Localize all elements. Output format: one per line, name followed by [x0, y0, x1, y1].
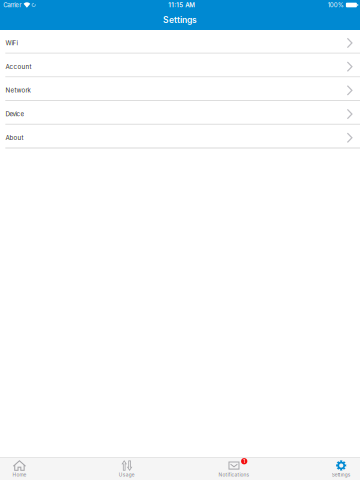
staticText: Carrier: [3, 1, 21, 9]
button[interactable]: Device: [0, 101, 360, 125]
staticText: About: [5, 134, 23, 141]
staticText: Network: [5, 87, 30, 94]
staticText: Settings: [332, 472, 351, 478]
staticText: Device: [5, 110, 24, 118]
staticText: WiFi: [5, 39, 17, 47]
button[interactable]: Usage: [73, 458, 180, 480]
button[interactable]: WiFi: [0, 30, 360, 54]
button[interactable]: 1: [180, 458, 288, 480]
staticText: 11:15 AM: [168, 1, 195, 9]
staticText: Account: [5, 63, 31, 70]
staticText: Home: [12, 472, 26, 478]
button[interactable]: Settings: [288, 458, 360, 480]
staticText: Usage: [119, 472, 135, 478]
button[interactable]: Account: [0, 54, 360, 77]
staticText: Settings: [163, 15, 197, 25]
staticText: 100%: [328, 1, 344, 9]
button[interactable]: Network: [0, 77, 360, 101]
button[interactable]: Home: [0, 458, 73, 480]
button[interactable]: About: [0, 125, 360, 148]
staticText: Notifications: [218, 472, 249, 478]
staticText: 1: [243, 458, 245, 464]
